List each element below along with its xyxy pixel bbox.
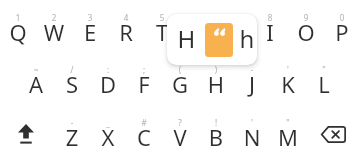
button[interactable]: : (90, 53, 126, 105)
button[interactable]: " (306, 53, 342, 105)
button[interactable]: ? (162, 106, 198, 158)
staticText: 5 (144, 12, 180, 23)
staticText: Y (180, 17, 216, 47)
staticText: S (54, 69, 90, 99)
staticText: E (72, 17, 108, 47)
staticText: ~ (18, 64, 54, 75)
button[interactable]: ( (162, 53, 198, 105)
staticText: ? (162, 117, 198, 128)
button[interactable]: 0 (324, 1, 360, 53)
staticText: R (108, 17, 144, 47)
staticText: T (144, 17, 180, 47)
staticText: - (234, 64, 270, 75)
staticText: A (18, 69, 54, 99)
button[interactable]: Backspace (313, 106, 353, 158)
staticText: D (90, 69, 126, 99)
staticText: " (306, 64, 342, 75)
staticText: H (167, 22, 206, 55)
button[interactable]: 9 (288, 1, 324, 53)
staticText: " (270, 117, 306, 128)
staticText: L (306, 69, 342, 99)
button[interactable]: 5 (144, 1, 180, 53)
button[interactable]: " (270, 106, 306, 158)
button[interactable]: 8 (252, 1, 288, 53)
staticText: ; (126, 64, 162, 75)
button[interactable]: ; (126, 53, 162, 105)
staticText: 2 (36, 12, 72, 23)
button[interactable]: 2 (36, 1, 72, 53)
staticText: V (162, 122, 198, 152)
button[interactable]: # (126, 106, 162, 158)
button[interactable]: 3 (72, 1, 108, 53)
staticText: _ (90, 117, 126, 128)
button[interactable]: ' (270, 53, 306, 105)
staticText: X (90, 122, 126, 152)
button[interactable]: ) (198, 53, 234, 105)
staticText: / (54, 64, 90, 75)
button[interactable]: ! (198, 106, 234, 158)
button[interactable]: 1 (0, 1, 36, 53)
staticText: 0 (324, 12, 360, 23)
staticText: C (126, 122, 162, 152)
staticText: ( (162, 64, 198, 75)
staticText: # (126, 117, 162, 128)
staticText: H (198, 69, 234, 99)
staticText: J (234, 69, 270, 99)
button[interactable]: _ (90, 106, 126, 158)
staticText: I (252, 17, 288, 47)
staticText: ! (198, 117, 234, 128)
staticText: ' (270, 64, 306, 75)
staticText: O (288, 17, 324, 47)
staticText: 3 (72, 12, 108, 23)
staticText: - (54, 117, 90, 128)
staticText: 6 (180, 12, 216, 23)
staticText: ' (234, 117, 270, 128)
staticText: K (270, 69, 306, 99)
button[interactable]: Shift (7, 106, 44, 158)
button[interactable]: 7 (216, 1, 252, 53)
button[interactable]: / (54, 53, 90, 105)
staticText: : (90, 64, 126, 75)
staticText: 4 (108, 12, 144, 23)
staticText: 8 (252, 12, 288, 23)
button[interactable]: 4 (108, 1, 144, 53)
staticText: W (36, 17, 72, 47)
staticText: P (324, 17, 360, 47)
button[interactable]: ~ (18, 53, 54, 105)
staticText: 9 (288, 12, 324, 23)
staticText: F (126, 69, 162, 99)
staticText: B (198, 122, 234, 152)
staticText: 1 (0, 12, 36, 23)
staticText: h (227, 22, 257, 55)
staticText: M (270, 122, 306, 152)
button[interactable]: - (234, 53, 270, 105)
button[interactable]: - (54, 106, 90, 158)
button[interactable]: H (167, 14, 257, 65)
button[interactable]: 6 (180, 1, 216, 53)
staticText: 7 (216, 12, 252, 23)
staticText: G (162, 69, 198, 99)
staticText: U (216, 17, 252, 47)
staticText: ) (198, 64, 234, 75)
staticText: Z (54, 122, 90, 152)
button[interactable]: ' (234, 106, 270, 158)
staticText: N (234, 122, 270, 152)
staticText: Q (0, 17, 36, 47)
